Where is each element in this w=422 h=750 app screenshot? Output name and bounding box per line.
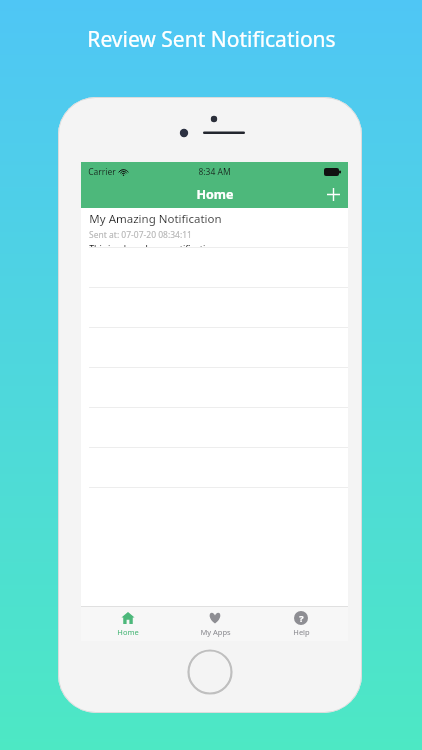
button[interactable]: Add notification xyxy=(318,181,348,208)
staticText: ? xyxy=(299,612,304,624)
staticText: My Apps xyxy=(200,627,231,637)
staticText: Sent at: 07-07-20 08:34:11 xyxy=(89,229,192,241)
staticText: Review Sent Notifications xyxy=(87,25,336,54)
staticText: Help xyxy=(293,627,310,637)
staticText: This is a brand new notification xyxy=(89,243,216,247)
staticText: Home xyxy=(117,627,139,637)
button[interactable]: Home xyxy=(89,607,167,641)
button[interactable]: My Amazing Notification xyxy=(81,208,348,247)
staticText: My Amazing Notification xyxy=(89,211,222,227)
button[interactable]: My Apps xyxy=(176,607,254,641)
staticText: Home xyxy=(196,186,234,203)
button[interactable]: ? xyxy=(262,607,340,641)
staticText: Carrier xyxy=(88,166,116,178)
staticText: 8:34 AM xyxy=(198,166,231,178)
